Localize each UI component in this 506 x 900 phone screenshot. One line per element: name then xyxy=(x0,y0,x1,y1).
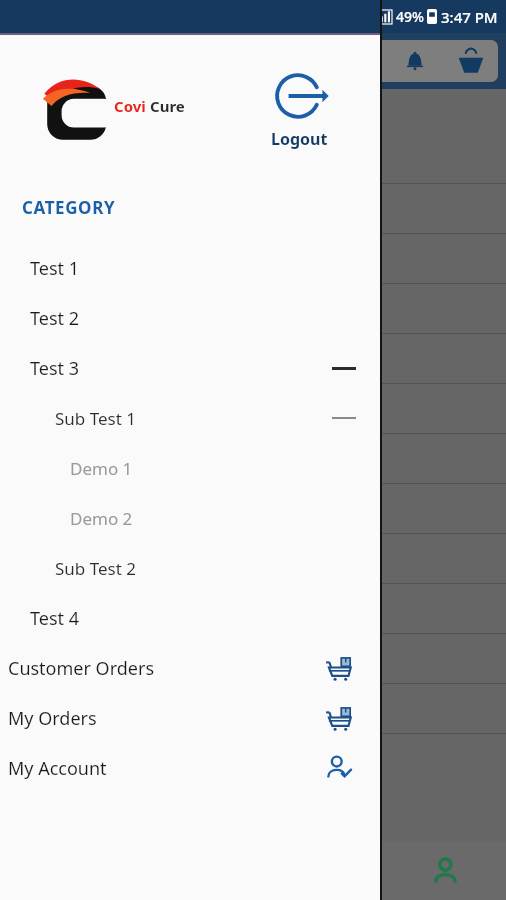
button[interactable]: Test 2 xyxy=(0,293,380,343)
button[interactable] xyxy=(0,634,506,684)
staticText: Test 3 xyxy=(30,356,79,381)
staticText: Sub Test 1 xyxy=(55,407,136,430)
staticText: Test 1 xyxy=(30,256,79,281)
staticText: Logout xyxy=(271,128,328,150)
staticText: My Orders xyxy=(8,706,97,731)
button[interactable]: Notifications xyxy=(392,40,438,82)
button[interactable]: Test 1 xyxy=(0,243,380,293)
button[interactable] xyxy=(0,434,506,484)
button[interactable]: Profile xyxy=(386,842,506,900)
button[interactable]: Demo 1 xyxy=(0,443,380,493)
button[interactable] xyxy=(0,284,506,334)
button[interactable]: Demo 2 xyxy=(0,493,380,543)
staticText: Demo 2 xyxy=(70,507,133,530)
button[interactable]: Sub Test 2 xyxy=(0,543,380,593)
staticText: My Account xyxy=(8,756,107,781)
staticText: Test 2 xyxy=(30,306,79,331)
button[interactable] xyxy=(0,584,506,634)
button[interactable]: My Orders xyxy=(0,693,380,743)
button[interactable] xyxy=(0,384,506,434)
staticText: Test 4 xyxy=(30,606,79,631)
button[interactable]: Sub Test 1 xyxy=(0,393,380,443)
button[interactable]: Test 3 xyxy=(0,343,380,393)
button[interactable] xyxy=(0,334,506,384)
button[interactable]: Test 4 xyxy=(0,593,380,643)
button[interactable] xyxy=(0,234,506,284)
staticText: Covi xyxy=(114,96,150,116)
staticText: 3:47 PM xyxy=(441,7,498,27)
button[interactable] xyxy=(0,134,506,184)
button[interactable]: Cart xyxy=(448,40,494,82)
button[interactable] xyxy=(0,484,506,534)
button[interactable]: Covi xyxy=(40,70,190,150)
button[interactable] xyxy=(0,534,506,584)
staticText: Demo 1 xyxy=(70,457,133,480)
staticText: Customer Orders xyxy=(8,656,155,681)
button[interactable]: Logout xyxy=(271,70,328,150)
button[interactable]: My Account xyxy=(0,743,380,793)
staticText: 49% xyxy=(396,7,424,26)
button[interactable] xyxy=(0,184,506,234)
staticText: CATEGORY xyxy=(22,196,116,219)
staticText: Cure xyxy=(150,96,185,116)
button[interactable]: Customer Orders xyxy=(0,643,380,693)
button[interactable] xyxy=(0,684,506,734)
staticText: Sub Test 2 xyxy=(55,557,136,580)
